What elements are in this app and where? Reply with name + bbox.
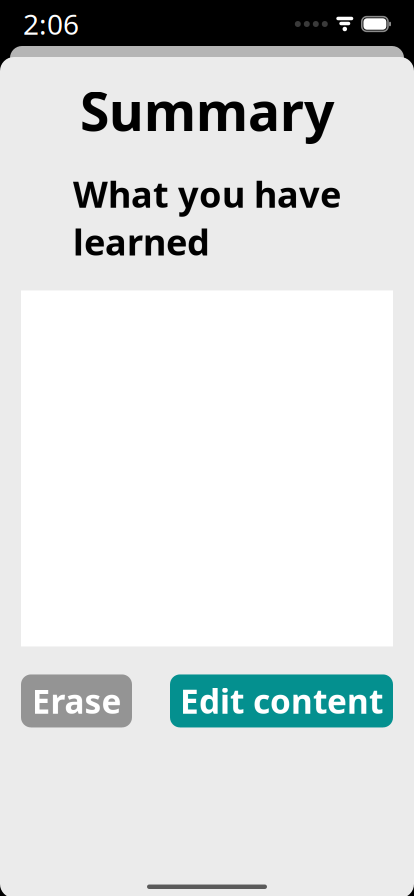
staticText: Edit content: [180, 679, 383, 723]
staticText: What you have learned: [73, 170, 341, 265]
button[interactable]: Erase: [21, 674, 132, 727]
staticText: Erase: [31, 679, 121, 723]
staticText: 2:06: [23, 5, 79, 43]
button[interactable]: Edit content: [170, 674, 393, 727]
staticText: Summary: [80, 75, 334, 146]
